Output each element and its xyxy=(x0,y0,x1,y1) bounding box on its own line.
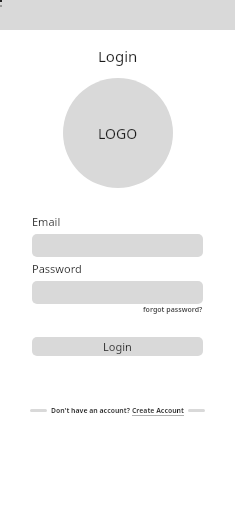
staticText: LOGO xyxy=(98,124,138,143)
button[interactable]: Login xyxy=(32,337,203,356)
button[interactable]: forgot password? xyxy=(143,305,203,315)
staticText: Login xyxy=(103,339,132,354)
staticText: Create Account xyxy=(132,406,184,415)
other: App logo xyxy=(63,78,173,188)
button[interactable]: Create Account xyxy=(132,406,184,415)
staticText: Login xyxy=(98,46,138,66)
staticText: Password xyxy=(32,261,82,276)
staticText: Email xyxy=(32,214,61,229)
staticText: Don't have an account? xyxy=(51,406,130,415)
staticText: forgot password? xyxy=(143,305,203,315)
